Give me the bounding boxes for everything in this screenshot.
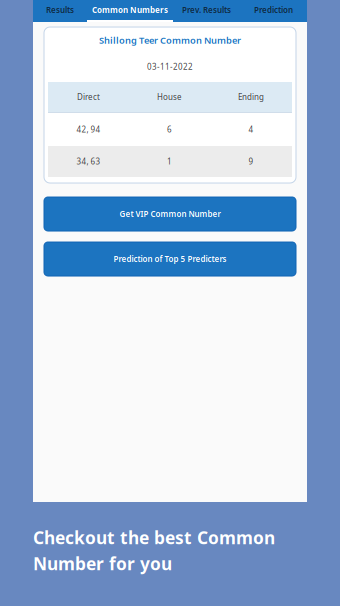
staticText: Direct [77, 92, 100, 102]
staticText: 9 [248, 156, 253, 167]
staticText: Get VIP Common Number [119, 209, 220, 219]
staticText: Ending [238, 92, 264, 102]
staticText: Checkout the best Common [33, 526, 275, 549]
button[interactable]: Results [33, 0, 87, 22]
staticText: Prediction of Top 5 Predicters [113, 254, 226, 264]
staticText: Number for you [33, 552, 172, 575]
button[interactable]: Get VIP Common Number [44, 197, 296, 231]
staticText: 6 [167, 124, 172, 135]
button[interactable]: Prediction of Top 5 Predicters [44, 242, 296, 276]
button[interactable]: Prev. Results [173, 0, 240, 22]
staticText: Prev. Results [182, 5, 231, 15]
staticText: Results [46, 5, 74, 15]
staticText: Prediction [254, 5, 293, 15]
staticText: Shillong Teer Common Number [99, 34, 241, 46]
staticText: House [157, 92, 182, 102]
staticText: 1 [167, 156, 172, 167]
button[interactable]: Prediction [240, 0, 307, 22]
button[interactable]: Common Numbers [87, 0, 173, 22]
staticText: 4 [248, 124, 253, 135]
staticText: Common Numbers [92, 5, 168, 15]
staticText: 34, 63 [76, 156, 100, 167]
staticText: 42, 94 [76, 124, 100, 135]
staticText: 03-11-2022 [147, 61, 193, 72]
